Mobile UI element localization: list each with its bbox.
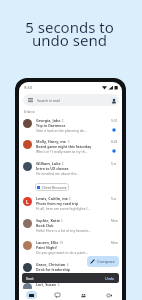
button[interactable]: Lauren, Ellie bbox=[19, 241, 122, 262]
staticText: Lauren, Ellie bbox=[36, 240, 59, 245]
staticText: Paint Night! bbox=[36, 245, 57, 250]
staticText: Grace, Christian bbox=[36, 262, 66, 267]
staticText: Sophie, Katie bbox=[36, 218, 60, 223]
staticText: 5 seconds to bbox=[25, 17, 114, 37]
staticText: 8:42 bbox=[111, 140, 118, 144]
button[interactable]: Lori, Susan bbox=[19, 283, 122, 300]
button[interactable]: Spaces bbox=[70, 289, 96, 300]
staticText: Undo bbox=[105, 276, 115, 281]
button[interactable]: Georgia, Jake bbox=[19, 119, 122, 140]
staticText: Who's in? I really want to try th... bbox=[36, 149, 88, 154]
staticText: Tue bbox=[111, 197, 117, 201]
staticText: Mon bbox=[111, 263, 118, 267]
staticText: Molly, Harry, me bbox=[36, 139, 67, 144]
staticText: Compose bbox=[97, 259, 115, 264]
staticText: Sent bbox=[26, 276, 34, 281]
staticText: Hi all, here are some highlights f... bbox=[36, 206, 91, 211]
button[interactable]: Grace, Christian bbox=[19, 263, 122, 284]
staticText: undo send bbox=[32, 30, 107, 50]
staticText: Search in mail bbox=[37, 98, 61, 103]
staticText: Georgia, Jake bbox=[36, 118, 61, 123]
button[interactable]: Sophie, Katie bbox=[19, 219, 122, 240]
staticText: Mon bbox=[111, 219, 118, 223]
staticText: He emailed me about the... bbox=[36, 171, 80, 176]
staticText: Client Resource bbox=[42, 185, 67, 190]
staticText: 3 bbox=[60, 219, 63, 223]
staticText: 2 bbox=[61, 162, 64, 166]
button[interactable]: Molly, Harry, me bbox=[19, 140, 122, 161]
staticText: Intro to UX classes bbox=[36, 166, 69, 171]
staticText: L bbox=[26, 198, 29, 205]
staticText: 2 bbox=[57, 283, 60, 287]
staticText: Book Club bbox=[36, 223, 54, 228]
staticText: Tue bbox=[111, 162, 117, 166]
button[interactable]: Account bbox=[110, 97, 117, 104]
staticText: Lewis, Caitlin, me bbox=[36, 196, 68, 201]
button[interactable]: William, Luke bbox=[19, 162, 122, 183]
button[interactable]: Mail bbox=[19, 289, 44, 300]
staticText: Do you guys want to do a paint... bbox=[36, 250, 89, 255]
staticText: 3 bbox=[67, 140, 70, 144]
staticText: Hello! Here is a list of my favorite... bbox=[36, 228, 92, 233]
staticText: Deck for leadership bbox=[36, 267, 70, 272]
button[interactable]: Search in mail bbox=[23, 94, 119, 106]
button[interactable]: L bbox=[19, 197, 122, 218]
button[interactable]: Client Resource bbox=[35, 183, 69, 191]
staticText: 2 bbox=[61, 119, 64, 123]
staticText: 3 bbox=[68, 197, 71, 201]
staticText: Inbox bbox=[24, 109, 35, 114]
staticText: 9:30 bbox=[24, 85, 32, 90]
button[interactable]: Undo bbox=[105, 276, 115, 281]
staticText: Mon bbox=[111, 241, 118, 245]
staticText: William, Luke bbox=[36, 161, 61, 166]
staticText: Trip to Dartmoor bbox=[36, 123, 66, 128]
staticText: Take a look at the planning do... bbox=[36, 128, 87, 133]
staticText: 9:01 bbox=[111, 119, 118, 123]
staticText: Board game night this Saturday bbox=[36, 144, 92, 149]
button[interactable]: Compose bbox=[87, 256, 119, 267]
staticText: Lori, Susan bbox=[36, 282, 57, 287]
button[interactable]: Meet bbox=[96, 289, 122, 300]
staticText: 6 bbox=[66, 263, 69, 267]
staticText: 10 bbox=[59, 241, 64, 245]
button[interactable]: Chat bbox=[44, 289, 70, 300]
staticText: Photo from my road trip bbox=[36, 201, 79, 206]
staticText: I put together a deck for the... bbox=[36, 272, 84, 277]
